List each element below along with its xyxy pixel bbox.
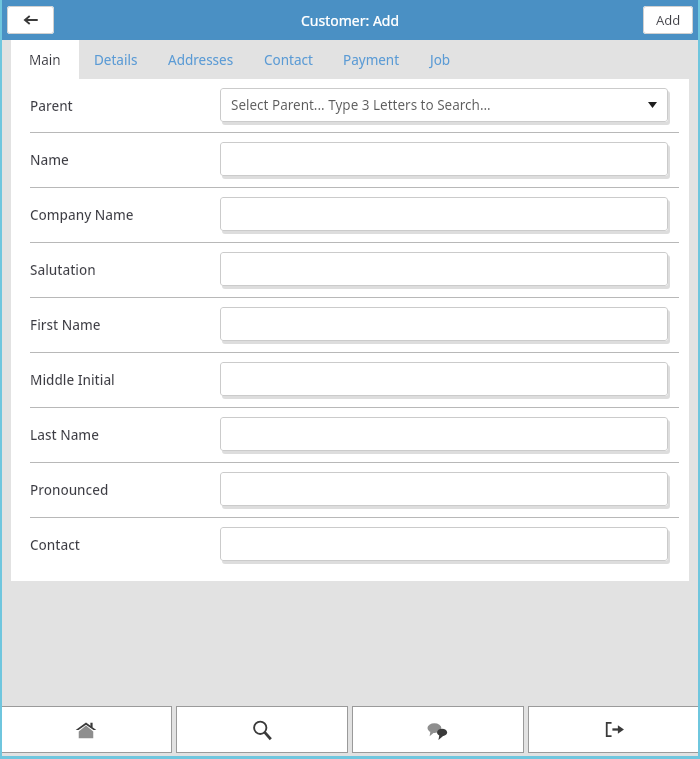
button[interactable]: [220, 252, 668, 286]
staticText: Addresses: [168, 51, 234, 69]
button[interactable]: [220, 197, 668, 231]
staticText: Parent: [30, 97, 73, 115]
button[interactable]: Main: [11, 40, 79, 79]
button[interactable]: Contact: [249, 40, 328, 79]
button[interactable]: Last Name: [11, 408, 689, 462]
button[interactable]: Search: [176, 706, 348, 753]
button[interactable]: Back: [7, 6, 54, 34]
staticText: Contact: [30, 536, 80, 554]
button[interactable]: Name: [11, 133, 689, 187]
staticText: Salutation: [30, 261, 96, 279]
staticText: Main: [29, 51, 61, 69]
staticText: Middle Initial: [30, 371, 115, 389]
button[interactable]: [220, 142, 668, 176]
staticText: Contact: [264, 51, 313, 69]
button[interactable]: [220, 307, 668, 341]
button[interactable]: Company Name: [11, 188, 689, 242]
button[interactable]: Job: [415, 40, 466, 79]
button[interactable]: Home: [0, 706, 172, 753]
button[interactable]: Payment: [328, 40, 415, 79]
staticText: Select Parent... Type 3 Letters to Searc…: [231, 96, 491, 114]
button[interactable]: Log out: [528, 706, 700, 753]
staticText: Pronounced: [30, 481, 109, 499]
button[interactable]: Details: [79, 40, 153, 79]
staticText: Job: [430, 51, 451, 69]
button[interactable]: Pronounced: [11, 463, 689, 517]
button[interactable]: [220, 527, 668, 561]
staticText: Last Name: [30, 426, 99, 444]
button[interactable]: Select Parent... Type 3 Letters to Searc…: [220, 88, 668, 122]
button[interactable]: Contact: [11, 518, 689, 572]
staticText: Payment: [343, 51, 400, 69]
staticText: Add: [656, 11, 681, 29]
staticText: Company Name: [30, 206, 134, 224]
button[interactable]: Messages: [352, 706, 524, 753]
button[interactable]: [220, 417, 668, 451]
button[interactable]: Parent: [11, 79, 689, 132]
button[interactable]: Addresses: [153, 40, 249, 79]
staticText: Name: [30, 151, 69, 169]
button[interactable]: Salutation: [11, 243, 689, 297]
button[interactable]: Add: [643, 6, 693, 34]
button[interactable]: [220, 362, 668, 396]
button[interactable]: First Name: [11, 298, 689, 352]
button[interactable]: [220, 472, 668, 506]
staticText: Customer: Add: [301, 11, 400, 30]
staticText: First Name: [30, 316, 101, 334]
staticText: Details: [94, 51, 138, 69]
button[interactable]: Middle Initial: [11, 353, 689, 407]
